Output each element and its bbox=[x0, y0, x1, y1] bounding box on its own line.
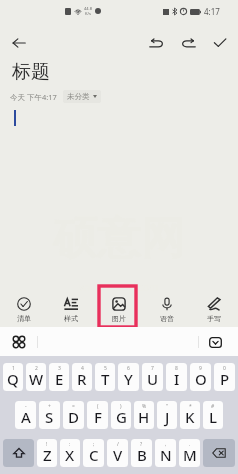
staticText: 未分类 bbox=[67, 92, 90, 101]
staticText: : bbox=[69, 441, 71, 448]
staticText: K/s bbox=[85, 11, 91, 16]
staticText: 清单 bbox=[17, 314, 31, 323]
button[interactable]: / bbox=[107, 439, 128, 467]
button[interactable]: 4 bbox=[72, 363, 92, 391]
staticText: . bbox=[189, 441, 191, 448]
button[interactable]: 样式 bbox=[51, 294, 91, 326]
staticText: " bbox=[166, 403, 169, 410]
staticText: % bbox=[142, 403, 147, 410]
staticText: ) bbox=[120, 403, 122, 410]
button[interactable]: Keyboard menu bbox=[11, 334, 27, 350]
button[interactable]: % bbox=[134, 401, 154, 429]
staticText: , bbox=[165, 441, 167, 448]
button[interactable]: 8 bbox=[166, 363, 187, 391]
button[interactable]: Back bbox=[7, 31, 31, 55]
button[interactable]: 清单 bbox=[4, 294, 44, 326]
staticText: ( bbox=[97, 403, 99, 410]
button[interactable]: 2 bbox=[26, 363, 46, 391]
staticText: 9 bbox=[199, 365, 202, 372]
staticText: - bbox=[25, 403, 27, 410]
button[interactable]: 手写 bbox=[194, 294, 234, 326]
staticText: 语音 bbox=[160, 314, 174, 323]
button[interactable]: 3 bbox=[49, 363, 69, 391]
staticText: 1 bbox=[12, 365, 15, 372]
staticText: ; bbox=[93, 441, 95, 448]
staticText: 2 bbox=[35, 365, 38, 372]
staticText: V bbox=[113, 445, 123, 465]
staticText: 0 bbox=[223, 365, 226, 372]
staticText: + bbox=[48, 403, 51, 410]
staticText: 44.8 bbox=[84, 6, 92, 11]
button[interactable]: . bbox=[179, 439, 200, 467]
button[interactable]: ( bbox=[87, 401, 108, 429]
staticText: E bbox=[55, 369, 64, 389]
button[interactable]: + bbox=[39, 401, 60, 429]
button[interactable]: Save bbox=[209, 32, 231, 54]
staticText: ? bbox=[140, 441, 143, 448]
button[interactable]: 未分类 bbox=[63, 90, 101, 103]
staticText: 8 bbox=[175, 365, 178, 372]
staticText: K bbox=[185, 407, 195, 427]
staticText: 5 bbox=[104, 365, 107, 372]
button[interactable]: Hide keyboard bbox=[207, 334, 223, 350]
staticText: / bbox=[117, 441, 119, 448]
button[interactable]: * bbox=[180, 401, 200, 429]
button[interactable]: 5 bbox=[95, 363, 115, 391]
button[interactable]: Redo bbox=[177, 32, 199, 54]
staticText: 7 bbox=[151, 365, 154, 372]
button[interactable]: 图片 bbox=[99, 294, 139, 326]
staticText: H bbox=[138, 407, 150, 427]
staticText: ! bbox=[46, 441, 48, 448]
staticText: J bbox=[165, 407, 170, 427]
button[interactable]: - bbox=[15, 401, 36, 429]
staticText: = bbox=[72, 403, 75, 410]
staticText: R bbox=[77, 369, 87, 389]
staticText: 图片 bbox=[112, 314, 126, 323]
staticText: 3 bbox=[58, 365, 61, 372]
staticText: 6 bbox=[127, 365, 130, 372]
staticText: X bbox=[65, 445, 75, 465]
staticText: O bbox=[195, 369, 207, 389]
button[interactable]: 0 bbox=[214, 363, 235, 391]
button[interactable]: , bbox=[155, 439, 176, 467]
staticText: S bbox=[45, 407, 54, 427]
button[interactable]: Shift bbox=[3, 439, 34, 467]
button[interactable]: : bbox=[60, 439, 80, 467]
button[interactable]: = bbox=[63, 401, 84, 429]
button[interactable]: ! bbox=[37, 439, 57, 467]
staticText: * bbox=[189, 403, 192, 410]
staticText: # bbox=[211, 403, 215, 410]
button[interactable]: Undo bbox=[145, 32, 167, 54]
staticText: www.shuoyi.com bbox=[79, 280, 159, 294]
button[interactable]: 7 bbox=[142, 363, 163, 391]
staticText: 4 bbox=[81, 365, 84, 372]
button[interactable]: ? bbox=[131, 439, 152, 467]
staticText: L bbox=[209, 407, 218, 427]
button[interactable]: 语音 bbox=[147, 294, 187, 326]
button[interactable]: " bbox=[157, 401, 177, 429]
button[interactable]: 6 bbox=[118, 363, 139, 391]
staticText: W bbox=[29, 369, 44, 389]
staticText: U bbox=[147, 369, 159, 389]
button[interactable]: 1 bbox=[3, 363, 23, 391]
button[interactable]: # bbox=[203, 401, 223, 429]
staticText: Q bbox=[7, 369, 19, 389]
staticText: F bbox=[94, 407, 102, 427]
staticText: 今天 下午4:17 bbox=[10, 92, 57, 102]
staticText: Z bbox=[43, 445, 52, 465]
staticText: M bbox=[183, 445, 197, 465]
button[interactable]: 9 bbox=[190, 363, 211, 391]
button[interactable]: Backspace bbox=[203, 439, 235, 467]
staticText: N bbox=[160, 445, 172, 465]
button[interactable]: ; bbox=[83, 439, 104, 467]
staticText: D bbox=[68, 407, 79, 427]
staticText: P bbox=[220, 369, 230, 389]
staticText: I bbox=[174, 369, 180, 389]
staticText: 手写 bbox=[207, 314, 221, 323]
staticText: T bbox=[101, 369, 110, 389]
button[interactable]: ) bbox=[111, 401, 131, 429]
staticText: 标题 bbox=[12, 60, 50, 84]
staticText: 4:17 bbox=[204, 6, 220, 17]
staticText: A bbox=[21, 407, 31, 427]
